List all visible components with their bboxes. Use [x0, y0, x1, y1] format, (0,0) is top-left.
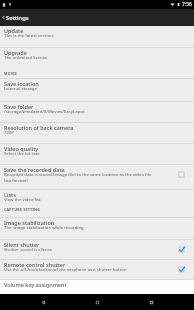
staticText: Save folder: [4, 103, 34, 110]
button[interactable]: Remote control shutter: [0, 260, 194, 279]
staticText: Internal storage: [4, 85, 37, 91]
staticText: The unlimited license.: [4, 54, 49, 60]
button[interactable]: Save location: [0, 79, 194, 101]
staticText: Upgrade: [4, 49, 27, 56]
staticText: Select the bit rate: [4, 150, 40, 156]
staticText: Volume key assignment: [4, 281, 67, 288]
button[interactable]: Lists: [0, 190, 194, 207]
button[interactable]: Silent shutter: [0, 240, 194, 259]
button[interactable]: Settings: [6, 9, 194, 26]
staticText: Lists: [4, 191, 16, 198]
staticText: Update: [4, 27, 24, 34]
button[interactable]: Save the recorded data: [0, 165, 194, 189]
staticText: Save the recorded data: [4, 166, 65, 173]
button[interactable]: Back: [32, 294, 54, 310]
button[interactable]: Upgrade: [0, 48, 194, 69]
button[interactable]: Home: [86, 294, 108, 310]
button[interactable]: Save folder: [0, 102, 194, 122]
staticText: Remote control shutter: [4, 261, 66, 268]
staticText: Image stabilization: [4, 219, 55, 226]
button[interactable]: Navigate up: [0, 9, 6, 26]
staticText: MOVIE: [4, 71, 18, 76]
staticText: Save location: [4, 80, 39, 87]
staticText: Settings: [6, 14, 29, 22]
button[interactable]: Image stabilization: [0, 218, 194, 239]
staticText: The image stabilization while recording: [4, 224, 84, 230]
staticText: Shutter sound is silence: [4, 246, 53, 252]
staticText: View the video list: [4, 196, 41, 202]
staticText: Use the off-hook button of the earphone …: [4, 266, 127, 272]
staticText: Video quality: [4, 145, 39, 152]
staticText: 720P: [4, 129, 14, 135]
button[interactable]: Disabled: [176, 169, 186, 179]
button[interactable]: Update: [0, 26, 194, 47]
button[interactable]: Resolution of back camera: [0, 123, 194, 143]
button[interactable]: Recent apps: [140, 294, 162, 310]
staticText: Recorded data is stored (image file) to …: [4, 171, 158, 183]
staticText: Resolution of back camera: [4, 124, 74, 131]
staticText: /storage/emulated/0/Movies/EasyLapse: [4, 108, 85, 114]
button[interactable]: Video quality: [0, 144, 194, 164]
button[interactable]: Volume key assignment: [0, 280, 194, 294]
button[interactable]: Enabled: [176, 264, 186, 274]
staticText: 7:56: [182, 1, 192, 8]
staticText: CAPTURE SETTING: [4, 207, 41, 212]
staticText: This is the latest version.: [4, 32, 55, 38]
staticText: Silent shutter: [4, 241, 40, 248]
button[interactable]: Enabled: [176, 244, 186, 254]
